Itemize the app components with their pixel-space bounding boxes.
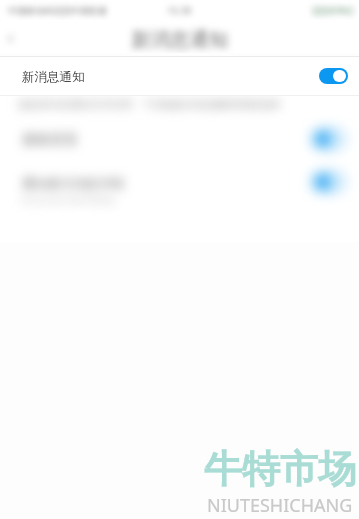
staticText: 16:38 <box>167 4 192 17</box>
staticText: 接收语音 <box>22 131 78 149</box>
staticText: NIUTESHICHANG <box>207 493 353 518</box>
staticText: 接收新消息通知关闭后将 <box>18 98 134 111</box>
staticText: 中国移动4G[]]]]中国联通 <box>8 4 107 16</box>
staticText: ]]]]]]83%[] <box>312 4 354 16</box>
staticText: 牛特市场 <box>204 445 356 493</box>
staticText: 新消息通知 <box>22 69 85 85</box>
staticText: 不再接收消息提醒请谨慎选择 <box>144 98 281 111</box>
staticText: 通知显示消息详情 <box>22 176 125 192</box>
staticText: ‹ <box>8 26 13 48</box>
staticText: 新消息通知 <box>131 27 229 52</box>
button[interactable]: 新消息通知开关 <box>319 68 348 84</box>
button[interactable]: 新消息通知 <box>0 57 359 95</box>
